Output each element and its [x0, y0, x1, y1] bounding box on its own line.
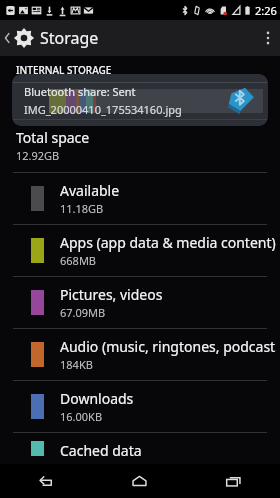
button[interactable]: Pictures, videos [0, 277, 280, 328]
other: Bluetooth share [224, 83, 258, 117]
staticText: Available [60, 181, 120, 200]
staticText: INTERNAL STORAGE [16, 63, 112, 77]
staticText: Bluetooth share: Sent [24, 84, 136, 99]
staticText: Audio (music, ringtones, podcasts) [60, 337, 276, 356]
staticText: Total space [16, 128, 90, 147]
staticText: IMG_20000410_175534160.jpg [24, 102, 182, 117]
staticText: 11.18GB [60, 201, 104, 216]
staticText: 184KB [60, 357, 93, 372]
staticText: 668MB [60, 253, 97, 268]
staticText: 2:26 [255, 3, 277, 18]
staticText: Storage [40, 27, 99, 49]
button[interactable]: Recent apps [209, 467, 258, 496]
staticText: 16.00KB [60, 409, 103, 424]
button[interactable]: Downloads [0, 381, 280, 432]
button[interactable]: Navigate up, Settings [0, 23, 41, 53]
button[interactable]: Apps (app data & media content) [0, 225, 280, 276]
button[interactable]: Back [22, 467, 71, 496]
button[interactable]: Cached data [0, 433, 280, 464]
button[interactable]: Bluetooth share: Sent [12, 74, 268, 126]
staticText: 12.92GB [16, 148, 60, 163]
staticText: 67.09MB [60, 305, 106, 320]
button[interactable]: Available [0, 173, 280, 224]
button[interactable]: Total space [0, 120, 280, 172]
button[interactable]: Audio (music, ringtones, podcasts) [0, 329, 280, 380]
staticText: Apps (app data & media content) [60, 233, 276, 252]
staticText: Downloads [60, 389, 134, 408]
staticText: Pictures, videos [60, 285, 163, 304]
staticText: Cached data [60, 441, 142, 456]
button[interactable]: More options [256, 24, 280, 52]
button[interactable]: Home [115, 467, 164, 496]
